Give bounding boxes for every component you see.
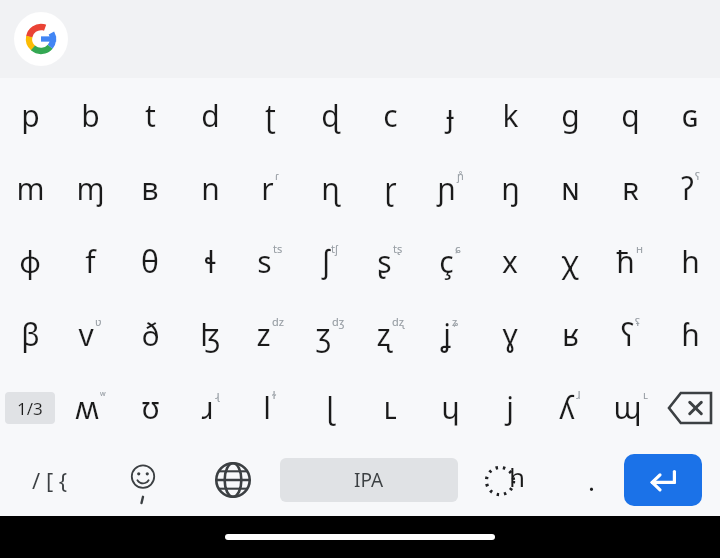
button[interactable]: . (558, 444, 624, 516)
staticText: ʑ (452, 314, 458, 329)
button[interactable]: ŋ (480, 152, 540, 225)
button[interactable]: m (0, 152, 60, 225)
button[interactable]: ʐ (360, 298, 420, 371)
button[interactable]: ʔ (660, 152, 720, 225)
button[interactable]: ʍ (60, 371, 120, 444)
staticText: dʐ (392, 314, 404, 329)
staticText: ɾ (275, 168, 279, 183)
button[interactable]: ʕ (600, 298, 660, 371)
button[interactable]: θ (120, 225, 180, 298)
button[interactable]: ʂ (360, 225, 420, 298)
staticText: ɴ (561, 168, 580, 209)
staticText: r (261, 168, 274, 209)
button[interactable]: Diacritics (458, 444, 558, 516)
staticText: ɱ (76, 168, 105, 209)
staticText: n (201, 168, 220, 209)
button[interactable]: ç (420, 225, 480, 298)
staticText: θ (141, 241, 159, 282)
button[interactable]: k (480, 78, 540, 152)
staticText: tʃ (331, 241, 338, 256)
button[interactable]: IPA (280, 458, 458, 502)
button[interactable]: χ (540, 225, 600, 298)
staticText: ɕ (455, 241, 461, 256)
button[interactable]: ð (120, 298, 180, 371)
button[interactable]: ɲ (420, 152, 480, 225)
staticText: dʒ (332, 314, 345, 329)
staticText: ɖ (321, 95, 340, 136)
button[interactable]: ʈ (240, 78, 300, 152)
button[interactable]: ɽ (360, 152, 420, 225)
button[interactable]: ħ (600, 225, 660, 298)
button[interactable]: ʎ (540, 371, 600, 444)
button[interactable]: ɸ (0, 225, 60, 298)
button[interactable]: ʙ (120, 152, 180, 225)
button[interactable]: g (540, 78, 600, 152)
staticText: k (502, 95, 519, 136)
staticText: ɢ (681, 95, 699, 136)
button[interactable]: q (600, 78, 660, 152)
button[interactable]: z (240, 298, 300, 371)
button[interactable]: ɥ (420, 371, 480, 444)
staticText: ɬ (205, 241, 216, 282)
button[interactable]: t (120, 78, 180, 152)
button[interactable]: 1/3 (5, 392, 55, 424)
staticText: ʃ (322, 241, 330, 282)
button[interactable]: ʃ (300, 225, 360, 298)
button[interactable]: Enter (624, 454, 702, 506)
staticText: f (85, 241, 96, 282)
staticText: m (16, 168, 45, 209)
staticText: g (561, 95, 580, 136)
button[interactable]: b (60, 78, 120, 152)
button[interactable]: l (240, 371, 300, 444)
button[interactable]: x (480, 225, 540, 298)
button[interactable]: ɳ (300, 152, 360, 225)
button[interactable]: ɭ (300, 371, 360, 444)
staticText: ʍ (75, 387, 99, 428)
button[interactable]: ɢ (660, 78, 720, 152)
button[interactable]: s (240, 225, 300, 298)
button[interactable]: c (360, 78, 420, 152)
staticText: ʜ (636, 241, 644, 256)
button[interactable]: h (660, 225, 720, 298)
button[interactable]: Google (14, 12, 68, 66)
button[interactable]: / [ { (0, 444, 100, 516)
button[interactable]: Emoji (100, 444, 186, 516)
button[interactable]: ɣ (480, 298, 540, 371)
staticText: ɫ (272, 387, 277, 402)
staticText: t (145, 95, 156, 136)
staticText: IPA (354, 467, 384, 493)
staticText: p (21, 95, 40, 136)
button[interactable]: ɮ (180, 298, 240, 371)
staticText: ʙ (141, 168, 159, 209)
button[interactable]: ʊ (120, 371, 180, 444)
button[interactable]: ɟ (420, 78, 480, 152)
button[interactable]: ʟ (360, 371, 420, 444)
button[interactable]: v (60, 298, 120, 371)
button[interactable]: ɦ (660, 298, 720, 371)
button[interactable]: p (0, 78, 60, 152)
staticText: l (263, 387, 271, 428)
button[interactable]: d (180, 78, 240, 152)
button[interactable]: ɖ (300, 78, 360, 152)
staticText: ʕ (621, 314, 634, 355)
button[interactable]: ɴ (540, 152, 600, 225)
button[interactable]: Backspace (660, 371, 720, 444)
button[interactable]: ɬ (180, 225, 240, 298)
button[interactable]: f (60, 225, 120, 298)
button[interactable]: β (0, 298, 60, 371)
button[interactable]: n (180, 152, 240, 225)
staticText: z (256, 314, 271, 355)
button[interactable]: j (480, 371, 540, 444)
button[interactable]: ʁ (540, 298, 600, 371)
staticText: ʁ (562, 314, 579, 355)
button[interactable]: ʝ (420, 298, 480, 371)
button[interactable]: ɱ (60, 152, 120, 225)
button[interactable]: ʒ (300, 298, 360, 371)
button[interactable]: ʀ (600, 152, 660, 225)
staticText: ɥ (441, 387, 460, 428)
button[interactable]: r (240, 152, 300, 225)
staticText: ɲ̊ (457, 168, 464, 183)
button[interactable]: ɰ (600, 371, 660, 444)
button[interactable]: ɹ (180, 371, 240, 444)
button[interactable]: Change language (186, 444, 280, 516)
